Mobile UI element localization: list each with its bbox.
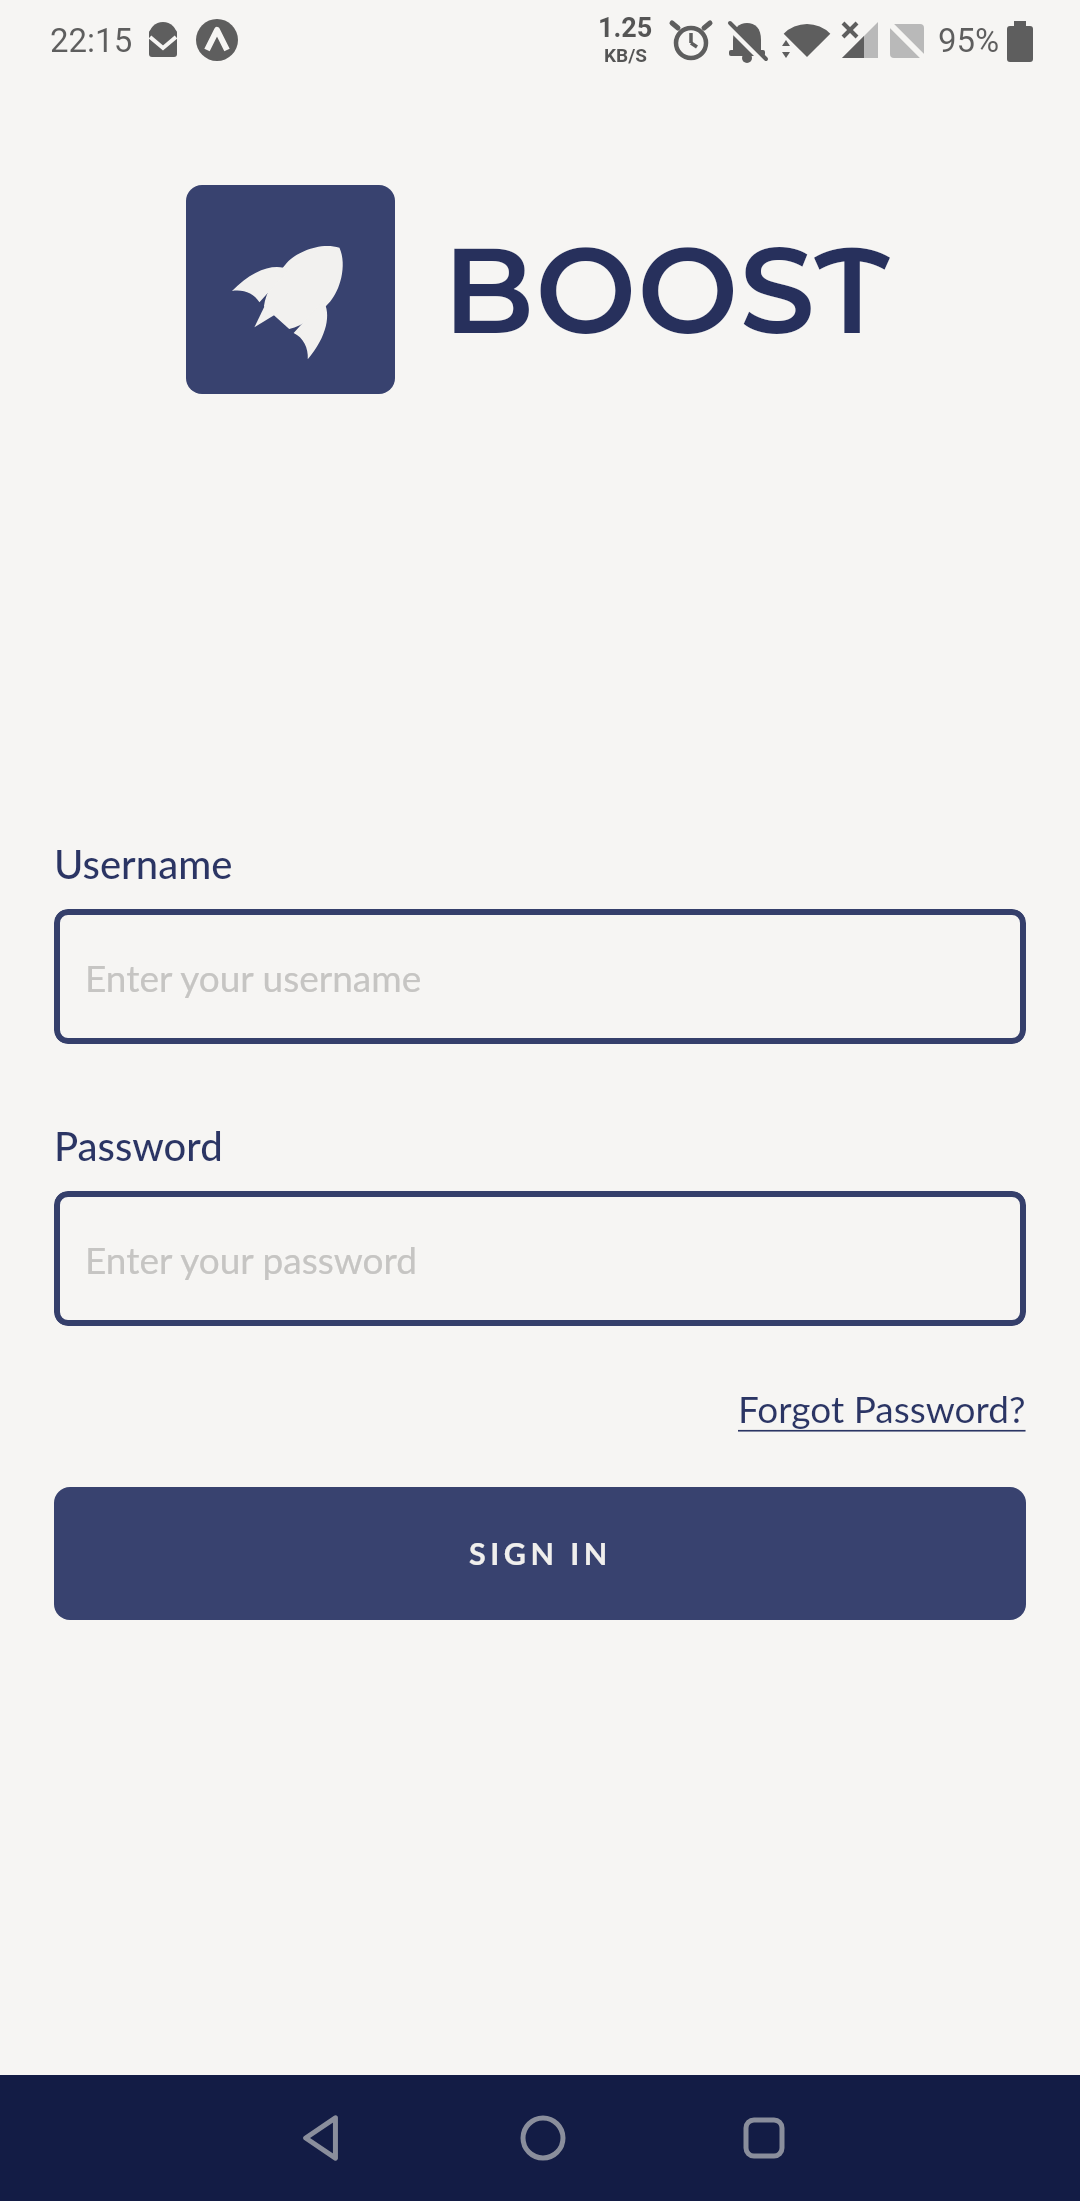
button[interactable]: Enter your password (54, 1191, 1026, 1326)
button[interactable] (483, 2078, 603, 2198)
staticText: KB/S (604, 44, 647, 66)
button[interactable] (262, 2078, 382, 2198)
staticText: BOOST (443, 217, 890, 363)
staticText: Enter your username (85, 955, 422, 999)
button[interactable]: SIGN IN (54, 1487, 1026, 1620)
staticText: 1.25 (598, 12, 653, 44)
staticText: Enter your password (85, 1237, 417, 1281)
staticText: Username (54, 840, 233, 888)
staticText: 22:15 (50, 21, 133, 60)
button[interactable] (704, 2078, 824, 2198)
staticText: Password (54, 1122, 223, 1170)
staticText: Forgot Password? (738, 1386, 1026, 1430)
staticText: SIGN IN (469, 1535, 612, 1572)
staticText: 95% (938, 21, 1000, 60)
button[interactable]: Forgot Password? (738, 1386, 1026, 1430)
button[interactable]: Enter your username (54, 909, 1026, 1044)
